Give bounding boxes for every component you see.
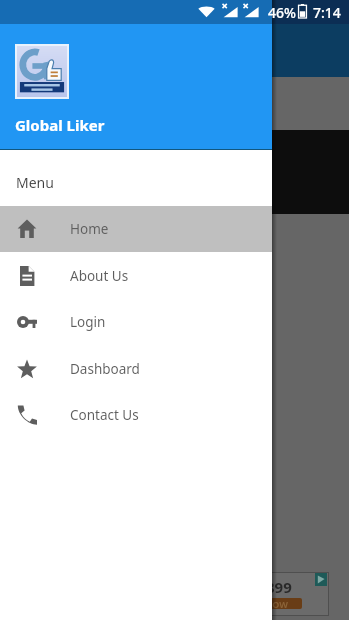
other: Login xyxy=(17,312,37,332)
staticText: Home xyxy=(70,220,109,238)
staticText: Contact Us xyxy=(70,406,139,424)
button[interactable]: Dashboard xyxy=(0,346,272,392)
staticText: Menu xyxy=(16,173,54,192)
button[interactable]: Contact Us xyxy=(0,392,272,438)
staticText: 899 xyxy=(266,577,292,597)
button[interactable]: 899 xyxy=(196,572,329,616)
button[interactable]: Login xyxy=(0,299,272,345)
other: Contact Us xyxy=(17,405,37,425)
staticText: NOW xyxy=(265,598,289,609)
button[interactable]: Home xyxy=(0,206,272,252)
staticText: Dashboard xyxy=(70,360,140,378)
staticText: 46% xyxy=(268,3,296,22)
staticText: Global Liker xyxy=(15,115,105,135)
staticText: Login xyxy=(70,313,106,331)
button[interactable] xyxy=(0,0,349,620)
button[interactable]: About Us xyxy=(0,253,272,299)
button[interactable]: Menu xyxy=(0,150,272,206)
staticText: 7:14 xyxy=(313,3,341,22)
button[interactable]: NOW xyxy=(252,598,302,609)
other: Home xyxy=(17,219,37,239)
staticText: About Us xyxy=(70,267,129,285)
other: Dashboard xyxy=(17,359,37,379)
other: About Us xyxy=(17,266,37,286)
